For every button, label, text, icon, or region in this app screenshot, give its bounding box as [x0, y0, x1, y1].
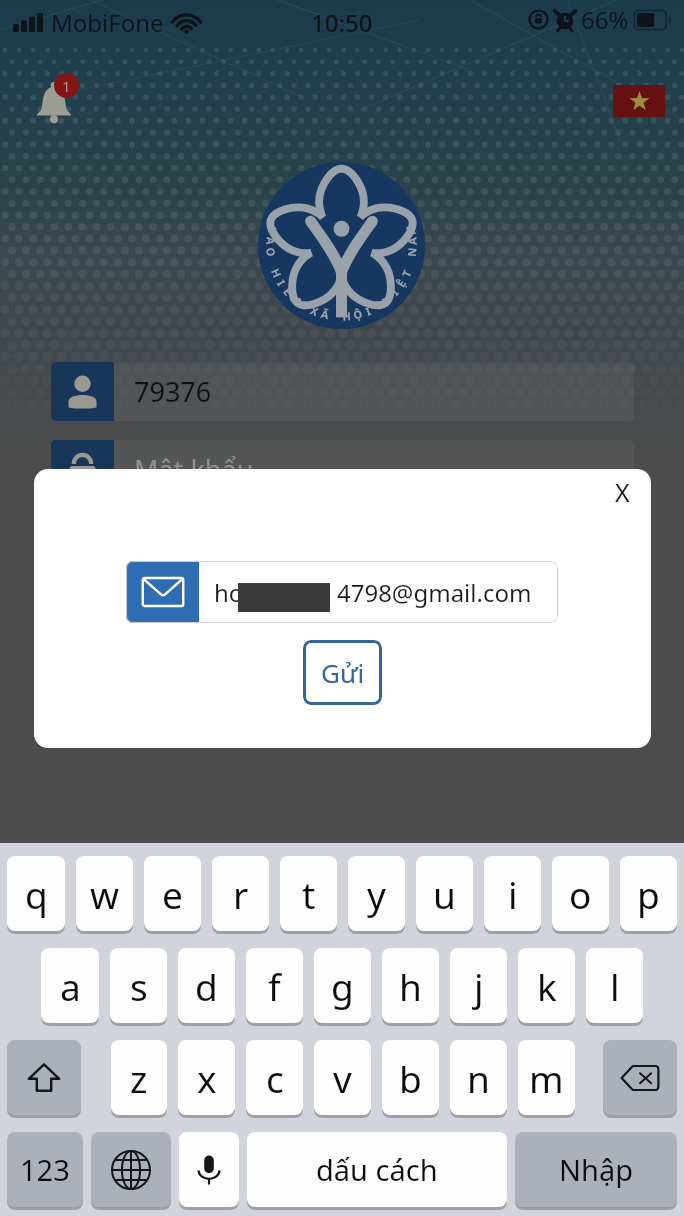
button[interactable]: u: [416, 856, 473, 931]
button[interactable]: x: [178, 1040, 235, 1115]
button[interactable]: Close: [601, 471, 643, 513]
staticText: X: [615, 475, 630, 509]
button[interactable]: d: [178, 948, 235, 1023]
staticText: 66%: [581, 3, 629, 36]
button[interactable]: o: [552, 856, 609, 931]
button[interactable]: Shift: [7, 1040, 81, 1115]
staticText: Mật khẩu: [134, 451, 254, 488]
button[interactable]: k: [518, 948, 575, 1023]
staticText: Nhập: [559, 1150, 634, 1189]
button[interactable]: Change keyboard: [91, 1132, 171, 1207]
button[interactable]: dấu cách: [247, 1132, 507, 1207]
staticText: c: [266, 1053, 284, 1103]
staticText: Gửi: [321, 655, 365, 690]
staticText: 79376: [134, 373, 212, 410]
button[interactable]: ho 4798@gmail.com: [126, 561, 558, 623]
staticText: j: [474, 961, 484, 1011]
button[interactable]: m: [518, 1040, 575, 1115]
button[interactable]: i: [484, 856, 541, 931]
button[interactable]: l: [586, 948, 643, 1023]
staticText: z: [130, 1053, 148, 1103]
button[interactable]: f: [246, 948, 303, 1023]
button[interactable]: t: [280, 856, 337, 931]
staticText: x: [197, 1053, 217, 1103]
staticText: MobiFone: [51, 6, 164, 39]
staticText: e: [162, 869, 183, 919]
staticText: s: [130, 961, 148, 1011]
staticText: ho 4798@gmail.com: [214, 576, 532, 609]
button[interactable]: s: [110, 948, 167, 1023]
button[interactable]: 79376: [51, 362, 634, 421]
staticText: b: [399, 1053, 422, 1103]
button[interactable]: Dictate: [179, 1132, 239, 1207]
staticText: o: [569, 869, 592, 919]
staticText: m: [529, 1053, 564, 1103]
button[interactable]: z: [111, 1040, 167, 1115]
staticText: n: [467, 1053, 490, 1103]
button[interactable]: 123: [7, 1132, 83, 1207]
button[interactable]: Language: [613, 85, 665, 117]
button[interactable]: Mật khẩu: [51, 440, 634, 499]
button[interactable]: c: [246, 1040, 303, 1115]
button[interactable]: r: [212, 856, 269, 931]
staticText: t: [302, 869, 316, 919]
staticText: u: [433, 869, 456, 919]
staticText: h: [399, 961, 422, 1011]
button[interactable]: j: [450, 948, 507, 1023]
staticText: d: [195, 961, 218, 1011]
button[interactable]: a: [41, 948, 99, 1023]
staticText: w: [90, 869, 120, 919]
staticText: 1: [62, 76, 71, 96]
staticText: f: [268, 961, 281, 1011]
button[interactable]: Backspace: [603, 1040, 677, 1115]
button[interactable]: Nhập: [515, 1132, 677, 1207]
button[interactable]: n: [450, 1040, 507, 1115]
button[interactable]: g: [314, 948, 371, 1023]
staticText: y: [367, 869, 386, 919]
button[interactable]: p: [620, 856, 677, 931]
button[interactable]: Gửi: [303, 640, 382, 705]
staticText: l: [610, 961, 620, 1011]
staticText: 10:50: [311, 6, 373, 39]
button[interactable]: Notifications: [30, 79, 78, 127]
staticText: k: [537, 961, 557, 1011]
button[interactable]: y: [348, 856, 405, 931]
button[interactable]: e: [144, 856, 201, 931]
staticText: p: [637, 869, 660, 919]
staticText: dấu cách: [316, 1150, 438, 1189]
staticText: r: [233, 869, 249, 919]
staticText: q: [25, 869, 48, 919]
staticText: i: [508, 869, 518, 919]
staticText: 123: [20, 1150, 70, 1189]
button[interactable]: w: [76, 856, 133, 931]
button[interactable]: b: [382, 1040, 439, 1115]
staticText: a: [60, 961, 81, 1011]
staticText: v: [333, 1053, 352, 1103]
button[interactable]: h: [382, 948, 439, 1023]
button[interactable]: v: [314, 1040, 371, 1115]
button[interactable]: q: [7, 856, 65, 931]
staticText: g: [331, 961, 354, 1011]
